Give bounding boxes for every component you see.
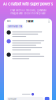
- button[interactable]: Send message: [45, 97, 49, 100]
- staticText: Summarize this: [8, 25, 22, 28]
- staticText: Message: [8, 98, 16, 100]
- staticText: Back: [7, 20, 11, 23]
- button[interactable]: Message: [7, 97, 44, 100]
- button[interactable]: Back: [7, 20, 11, 23]
- staticText: Chat with AI models, generate images and…: [10, 9, 46, 15]
- staticText: AI Chatbot with Superpowers: [3, 2, 53, 6]
- staticText: Chatbot: [26, 20, 34, 23]
